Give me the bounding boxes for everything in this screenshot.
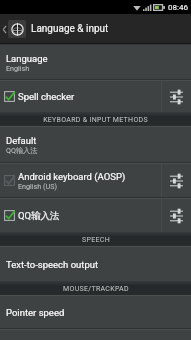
staticText: 08:46 bbox=[168, 3, 188, 12]
staticText: Language bbox=[6, 53, 48, 64]
button[interactable]: Text-to-speech output bbox=[0, 247, 191, 281]
staticText: QQ输入法 bbox=[18, 210, 60, 222]
button[interactable]: Android keyboard (AOSP) bbox=[0, 164, 161, 197]
button[interactable]: Spell checker bbox=[0, 81, 161, 112]
button[interactable]: Settings bbox=[162, 199, 191, 232]
staticText: English (US) bbox=[18, 182, 57, 190]
button[interactable]: Default bbox=[0, 127, 191, 162]
button[interactable]: Settings bbox=[162, 164, 191, 197]
staticText: English bbox=[6, 64, 30, 72]
staticText: Language & input bbox=[31, 23, 109, 35]
staticText: Pointer speed bbox=[6, 307, 65, 318]
button[interactable]: QQ输入法 bbox=[0, 199, 161, 232]
staticText: Default bbox=[6, 135, 37, 146]
staticText: SPEECH bbox=[82, 236, 110, 244]
staticText: Text-to-speech output bbox=[6, 259, 99, 270]
button[interactable]: Language bbox=[0, 45, 191, 79]
button[interactable]: Navigate up bbox=[0, 14, 26, 44]
staticText: Spell checker bbox=[18, 91, 75, 102]
staticText: QQ输入法 bbox=[6, 146, 38, 155]
button[interactable]: Settings bbox=[162, 81, 191, 112]
button[interactable]: Pointer speed bbox=[0, 296, 191, 328]
staticText: MOUSE/TRACKPAD bbox=[63, 285, 129, 293]
staticText: KEYBOARD & INPUT METHODS bbox=[43, 116, 148, 124]
staticText: Android keyboard (AOSP) bbox=[18, 171, 126, 182]
